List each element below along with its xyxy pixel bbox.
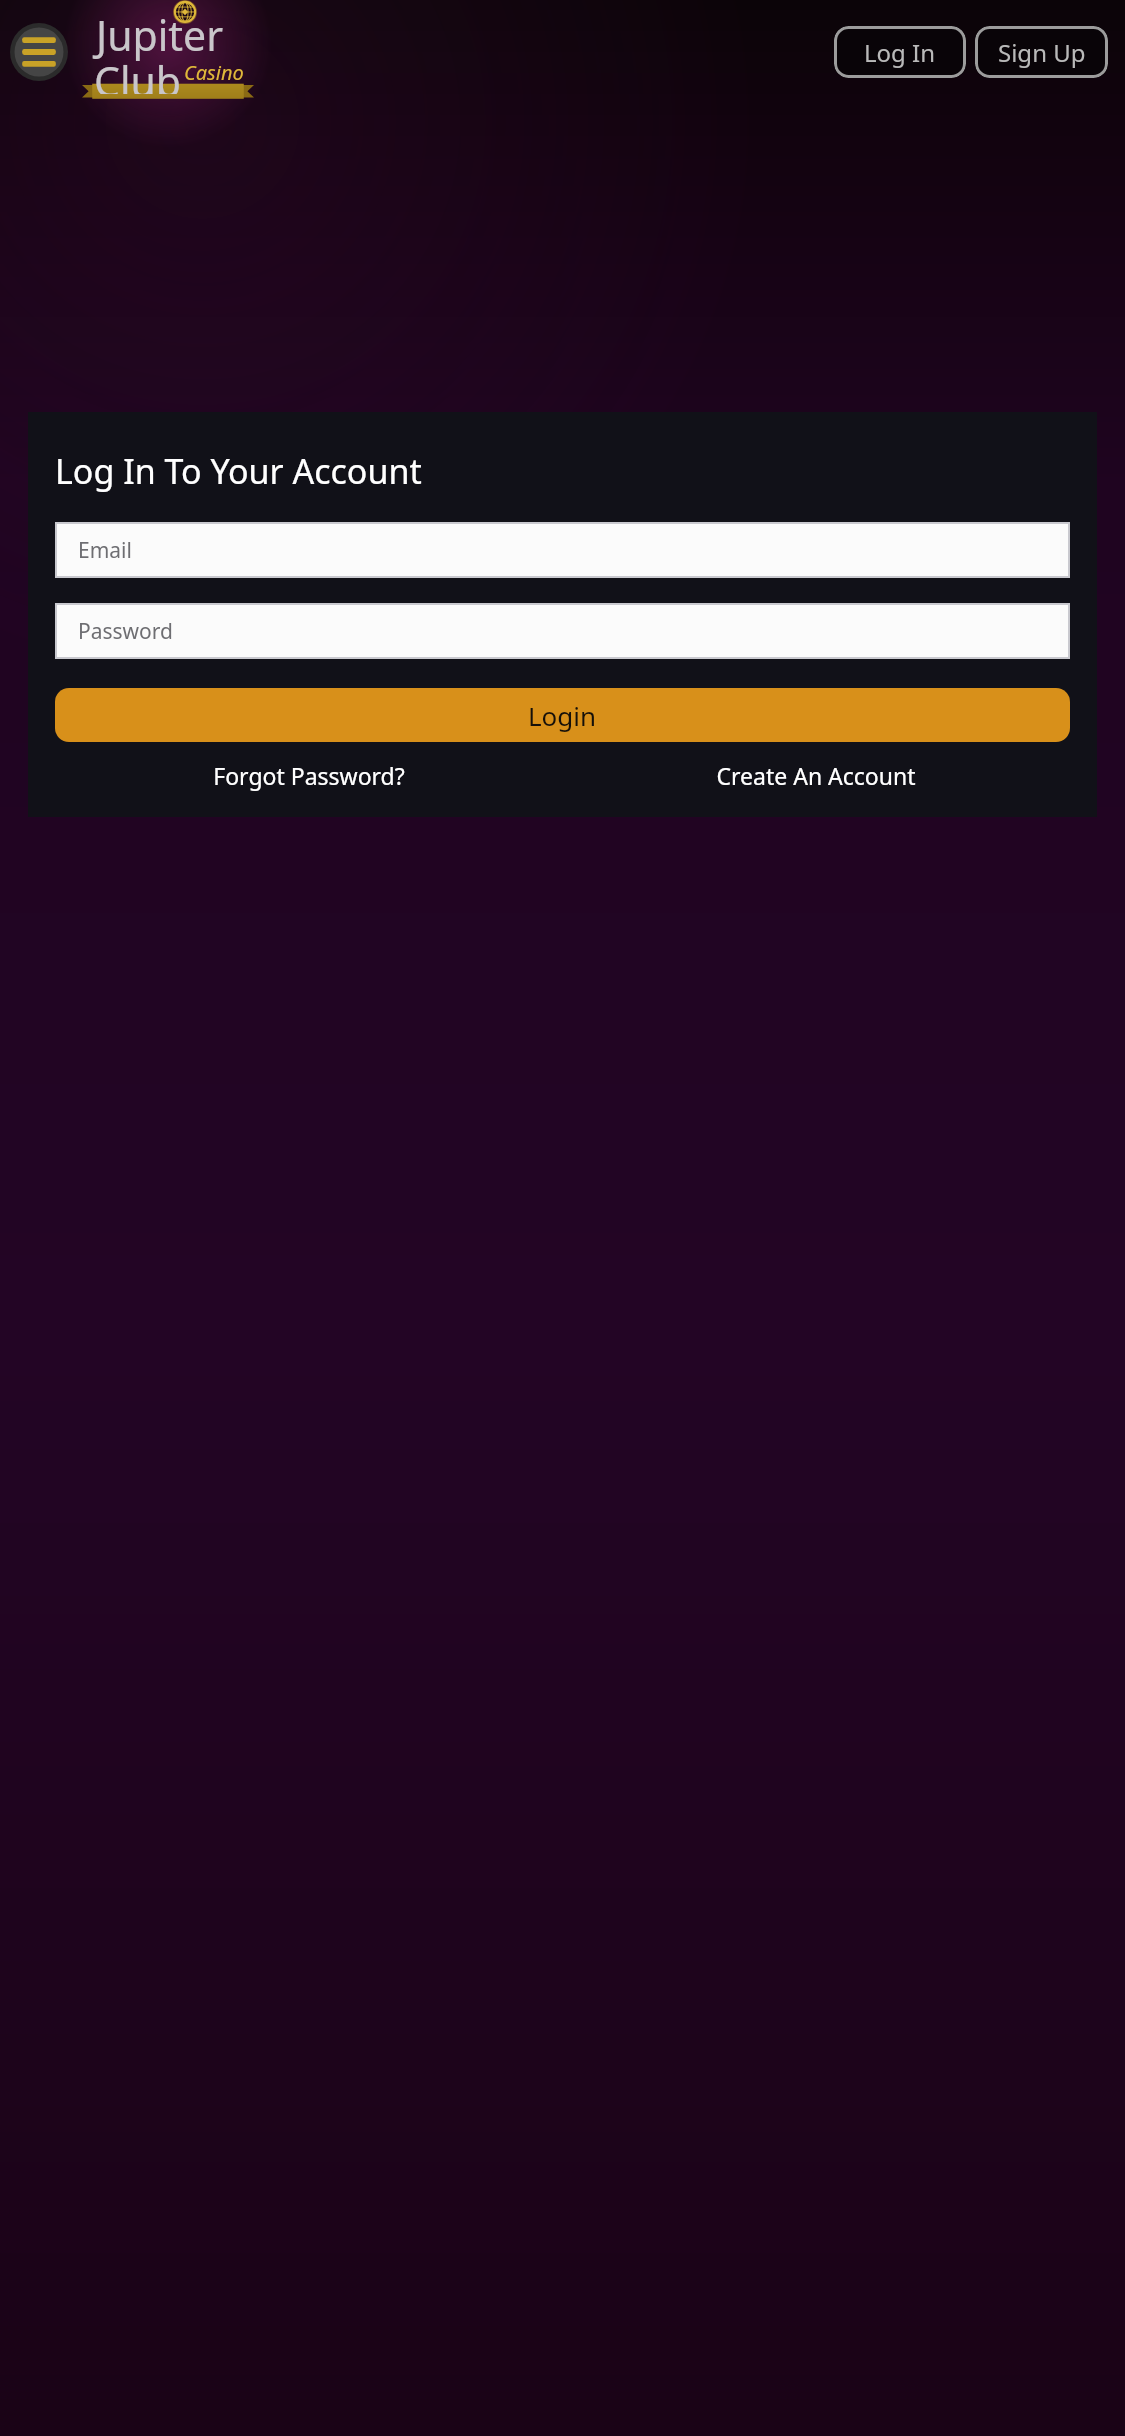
staticText: Create An Account: [716, 760, 916, 791]
staticText: Club: [94, 53, 182, 94]
staticText: Password: [78, 617, 173, 646]
staticText: Login: [528, 698, 597, 733]
button[interactable]: Open navigation menu: [10, 23, 68, 81]
button[interactable]: Sign Up: [975, 26, 1108, 78]
button[interactable]: Create An Account: [562, 760, 1070, 791]
button[interactable]: Login: [55, 688, 1070, 742]
button[interactable]: Forgot Password?: [55, 760, 562, 791]
button[interactable]: Password: [57, 605, 1068, 657]
button[interactable]: Email: [57, 524, 1068, 576]
staticText: Casino: [184, 59, 244, 86]
staticText: Forgot Password?: [213, 760, 405, 791]
staticText: Sign Up: [998, 36, 1086, 69]
staticText: Log In To Your Account: [55, 448, 422, 494]
staticText: Log In: [864, 36, 936, 69]
staticText: Email: [78, 536, 132, 565]
staticText: Jupiter: [96, 7, 224, 63]
button[interactable]: Log In: [834, 26, 966, 78]
